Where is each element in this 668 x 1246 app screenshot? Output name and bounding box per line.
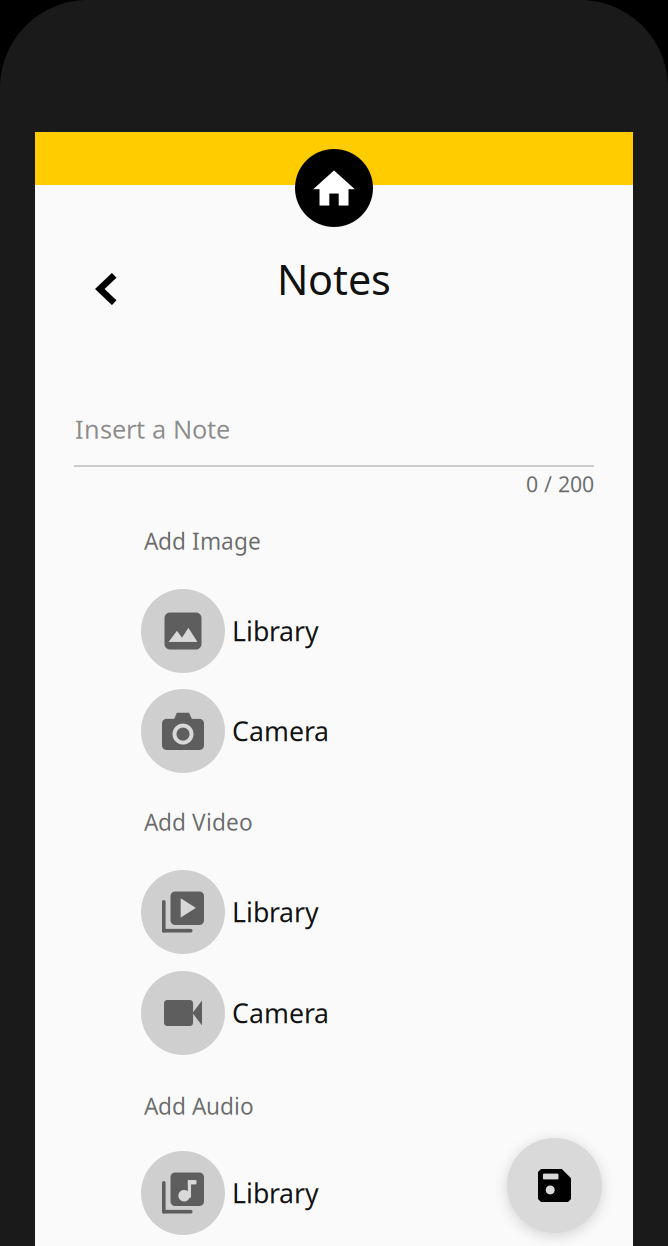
staticText: Add Video: [144, 807, 253, 837]
staticText: Add Image: [144, 526, 261, 556]
button[interactable]: Back: [76, 258, 138, 320]
staticText: Add Audio: [144, 1091, 254, 1121]
button[interactable]: Library: [141, 589, 481, 673]
button[interactable]: Home: [295, 149, 373, 227]
staticText: Library: [232, 894, 319, 930]
staticText: Insert a Note: [75, 412, 230, 446]
button[interactable]: Save: [507, 1138, 602, 1233]
staticText: Library: [232, 1175, 319, 1211]
button[interactable]: Camera: [141, 971, 481, 1055]
staticText: Camera: [232, 713, 329, 749]
button[interactable]: Camera: [141, 689, 481, 773]
staticText: Notes: [277, 252, 391, 306]
button[interactable]: Library: [141, 870, 481, 954]
staticText: Library: [232, 613, 319, 649]
staticText: 0 / 200: [526, 470, 594, 498]
staticText: Camera: [232, 995, 329, 1031]
button[interactable]: Library: [141, 1151, 481, 1235]
